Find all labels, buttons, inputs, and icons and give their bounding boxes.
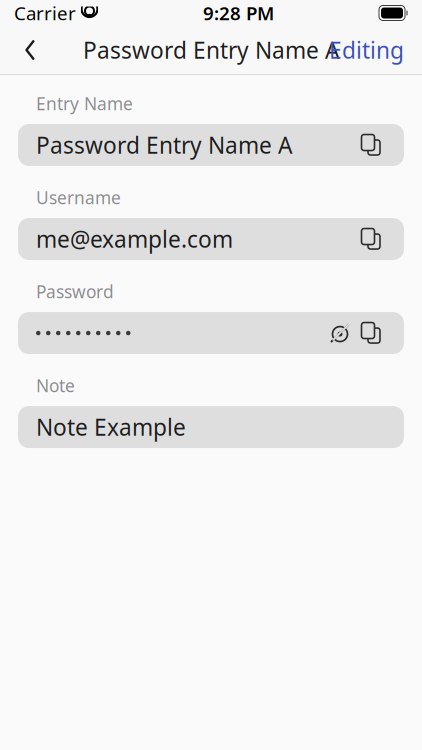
staticText: Editing (329, 35, 404, 65)
staticText: Username (36, 186, 121, 209)
button[interactable]: Copy password (356, 318, 386, 348)
staticText: me@example.com (36, 224, 233, 254)
staticText: Password (36, 280, 114, 303)
staticText: Note (36, 374, 75, 397)
staticText: Password Entry Name A (83, 35, 339, 65)
button[interactable]: Copy Entry Name (356, 130, 386, 160)
staticText: 9:28 PM (203, 1, 274, 25)
staticText: Password Entry Name A (36, 130, 292, 160)
staticText: Entry Name (36, 92, 133, 115)
button[interactable]: Editing (319, 28, 414, 72)
button[interactable]: Back (8, 28, 52, 72)
staticText: Carrier (14, 1, 76, 25)
staticText: Note Example (36, 412, 186, 442)
button[interactable]: Copy Username (356, 224, 386, 254)
button[interactable]: Show password (324, 318, 356, 348)
